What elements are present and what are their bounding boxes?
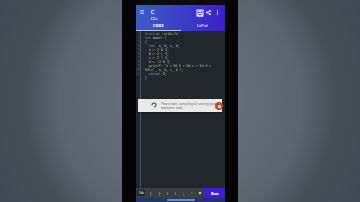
staticText: ) — [175, 191, 177, 196]
staticText: c = — [145, 56, 157, 60]
staticText: 6 — [138, 52, 140, 56]
staticText: ; — [165, 72, 167, 76]
staticText: return — [149, 72, 161, 76]
staticText: ; — [167, 56, 169, 60]
staticText: a, b, c, d; — [155, 44, 180, 48]
staticText: 3 — [165, 56, 167, 60]
staticText: awesome code — [161, 106, 183, 110]
staticText: printf( — [145, 64, 164, 68]
button[interactable]: Backspace — [196, 188, 204, 198]
staticText: ( — [167, 191, 169, 196]
staticText: 2 — [157, 56, 159, 60]
staticText: "a = %d b = %d c = %d d = — [164, 64, 212, 68]
staticText: , a, b, c, d ); — [155, 68, 184, 72]
staticText: int — [145, 36, 151, 40]
staticText: d = ~ — [145, 60, 159, 64]
staticText: 9 — [138, 64, 140, 68]
button[interactable]: ) — [172, 188, 180, 198]
staticText: 10 — [136, 68, 140, 72]
staticText: ; — [167, 48, 169, 52]
staticText: 2 — [157, 48, 159, 52]
staticText: <stdio.h> — [162, 32, 179, 36]
button[interactable]: Navigation menu — [136, 6, 147, 17]
staticText: a = — [145, 48, 157, 52]
staticText: & — [161, 60, 167, 64]
staticText: 5 — [138, 48, 140, 52]
button[interactable]: InPut — [180, 21, 225, 30]
staticText: Please wait, compiling & running your — [161, 102, 217, 106]
button[interactable]: ( — [164, 188, 172, 198]
staticText: & — [159, 48, 165, 52]
staticText: 8 — [138, 60, 140, 64]
staticText: { — [145, 40, 147, 44]
button[interactable]: ; — [180, 188, 188, 198]
staticText: CODE — [153, 23, 164, 28]
staticText: 4 — [138, 44, 140, 48]
staticText: } — [159, 191, 161, 196]
staticText: 1 — [138, 32, 140, 36]
staticText: 2 — [157, 52, 159, 56]
staticText: " — [191, 191, 193, 196]
staticText: 3 — [165, 48, 167, 52]
staticText: } — [145, 76, 147, 80]
staticText: 3 — [138, 40, 140, 44]
staticText: 3 — [167, 60, 169, 64]
button[interactable]: { — [146, 188, 155, 198]
staticText: | — [159, 52, 165, 56]
staticText: ; — [169, 60, 171, 64]
button[interactable]: Run — [204, 188, 225, 198]
staticText: ; — [183, 191, 185, 196]
staticText: Run — [211, 191, 219, 196]
staticText: main( ) — [151, 36, 167, 40]
button[interactable]: Tab — [137, 190, 145, 196]
staticText: 11 — [136, 72, 140, 76]
button[interactable]: Please wait, compiling & running your — [138, 99, 222, 112]
button[interactable]: } — [155, 188, 164, 198]
staticText: Tab — [139, 191, 144, 195]
button[interactable]: " — [188, 188, 196, 198]
staticText: ; — [167, 52, 169, 56]
staticText: ^ — [159, 56, 165, 60]
staticText: b = — [145, 52, 157, 56]
staticText: #include — [145, 32, 162, 36]
staticText: C2.c — [151, 17, 158, 21]
staticText: 3 — [165, 52, 167, 56]
button[interactable]: CODE — [136, 21, 180, 30]
staticText: 2 — [159, 60, 161, 64]
button[interactable]: More options — [213, 8, 222, 17]
button[interactable]: Save — [195, 8, 204, 17]
staticText: int — [149, 44, 155, 48]
staticText: C — [151, 8, 155, 16]
button[interactable]: Share — [204, 8, 213, 17]
staticText: 2 — [138, 36, 140, 40]
staticText: InPut — [197, 23, 209, 28]
staticText: 0 — [163, 72, 165, 76]
staticText: 7 — [138, 56, 140, 60]
button[interactable]: Cancel — [215, 102, 223, 110]
staticText: %d\n" — [145, 68, 155, 72]
staticText: { — [150, 191, 152, 196]
